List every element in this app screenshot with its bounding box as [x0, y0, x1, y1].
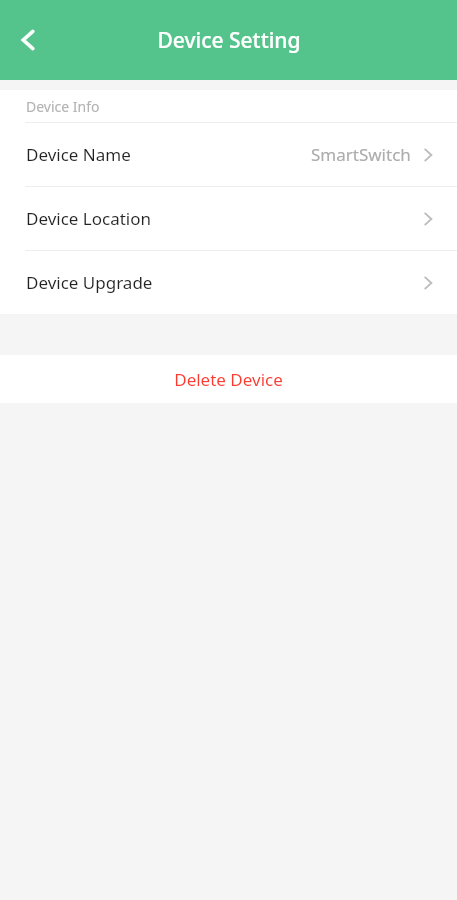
staticText: Device Setting	[157, 26, 301, 55]
staticText: Device Location	[26, 207, 152, 230]
button[interactable]: Device Name	[0, 123, 457, 186]
button[interactable]: Back	[6, 17, 52, 63]
staticText: SmartSwitch	[311, 143, 411, 166]
staticText: Device Info	[26, 97, 100, 116]
staticText: Device Name	[26, 143, 131, 166]
button[interactable]: Device Location	[0, 187, 457, 250]
button[interactable]: Device Upgrade	[0, 251, 457, 314]
staticText: Device Upgrade	[26, 271, 153, 294]
staticText: Delete Device	[174, 368, 283, 391]
button[interactable]: Delete Device	[0, 355, 457, 403]
